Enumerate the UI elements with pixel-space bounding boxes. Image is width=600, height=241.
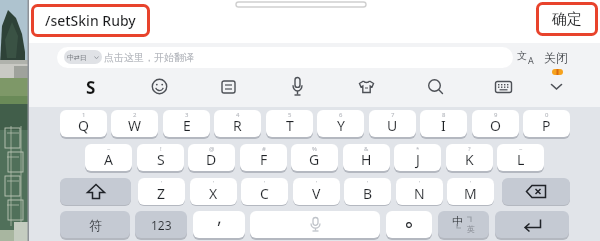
- button[interactable]: 1: [60, 110, 107, 137]
- button[interactable]: 8: [420, 110, 467, 137]
- button[interactable]: ?: [446, 144, 493, 171]
- button[interactable]: ': [241, 178, 288, 205]
- staticText: O: [490, 116, 501, 135]
- staticText: @: [209, 145, 215, 153]
- button[interactable]: ': [138, 178, 185, 205]
- staticText: N: [414, 184, 425, 203]
- staticText: 6: [339, 111, 343, 119]
- button[interactable]: 确定: [536, 2, 598, 36]
- button[interactable]: [547, 77, 566, 96]
- button[interactable]: [426, 77, 445, 96]
- staticText: E: [183, 116, 191, 135]
- button[interactable]: [502, 178, 570, 205]
- staticText: H: [361, 150, 372, 169]
- staticText: ': [264, 179, 266, 187]
- staticText: ,: [217, 205, 222, 230]
- staticText: 英: [467, 224, 475, 234]
- button[interactable]: 4: [214, 110, 261, 137]
- staticText: I: [441, 116, 446, 135]
- button[interactable]: 3: [163, 110, 210, 137]
- staticText: X: [209, 184, 218, 203]
- button[interactable]: 文: [517, 49, 538, 66]
- staticText: ': [419, 179, 421, 187]
- button[interactable]: [60, 178, 131, 205]
- button[interactable]: *: [394, 144, 441, 171]
- button[interactable]: ,: [193, 211, 245, 238]
- staticText: K: [465, 150, 474, 169]
- staticText: G: [309, 150, 320, 169]
- staticText: ': [161, 179, 163, 187]
- button[interactable]: [288, 77, 307, 96]
- button[interactable]: 9: [472, 110, 519, 137]
- staticText: P: [542, 116, 551, 135]
- staticText: 2: [133, 111, 137, 119]
- button[interactable]: 中: [438, 211, 489, 238]
- staticText: ': [367, 179, 369, 187]
- button[interactable]: ~: [497, 144, 544, 171]
- button[interactable]: [494, 77, 513, 96]
- button[interactable]: @: [188, 144, 235, 171]
- button[interactable]: ': [447, 178, 494, 205]
- staticText: 3: [185, 111, 189, 119]
- button[interactable]: [150, 77, 169, 96]
- staticText: A: [528, 54, 534, 66]
- button[interactable]: ': [396, 178, 443, 205]
- staticText: 4: [236, 111, 240, 119]
- staticText: 5: [288, 111, 292, 119]
- staticText: V: [312, 184, 321, 203]
- staticText: J: [416, 150, 420, 169]
- button[interactable]: [219, 77, 238, 96]
- button[interactable]: [250, 211, 380, 238]
- staticText: ': [316, 179, 318, 187]
- button[interactable]: 符: [60, 211, 130, 238]
- staticText: A: [104, 150, 113, 169]
- staticText: Y: [337, 116, 345, 135]
- button[interactable]: [495, 211, 569, 238]
- staticText: Q: [78, 116, 89, 135]
- staticText: *: [416, 145, 420, 153]
- button[interactable]: 7: [369, 110, 416, 137]
- staticText: B: [363, 184, 373, 203]
- staticText: 文: [517, 49, 527, 62]
- staticText: ': [213, 179, 215, 187]
- button[interactable]: &: [343, 144, 390, 171]
- button[interactable]: ~: [85, 144, 132, 171]
- staticText: D: [206, 150, 217, 169]
- staticText: F: [260, 150, 268, 169]
- staticText: #: [262, 145, 266, 153]
- staticText: ~: [107, 145, 111, 153]
- button[interactable]: ': [344, 178, 391, 205]
- staticText: C: [260, 184, 269, 203]
- staticText: 0: [545, 111, 549, 119]
- button[interactable]: #: [240, 144, 287, 171]
- staticText: M: [464, 184, 477, 203]
- staticText: 中: [452, 214, 463, 228]
- staticText: &: [364, 145, 369, 153]
- button[interactable]: 中⇄日: [57, 47, 513, 68]
- button[interactable]: [357, 77, 376, 96]
- button[interactable]: !: [137, 144, 184, 171]
- staticText: U: [387, 116, 398, 135]
- staticText: L: [517, 150, 525, 169]
- button[interactable]: S: [82, 76, 100, 96]
- button[interactable]: 6: [317, 110, 364, 137]
- button[interactable]: [386, 211, 432, 238]
- button[interactable]: %: [291, 144, 338, 171]
- staticText: 7: [391, 111, 395, 119]
- button[interactable]: 关闭: [544, 49, 568, 66]
- button[interactable]: 123: [135, 211, 187, 238]
- button[interactable]: ': [293, 178, 340, 205]
- staticText: W: [128, 116, 142, 135]
- button[interactable]: 0: [523, 110, 570, 137]
- button[interactable]: 2: [111, 110, 158, 137]
- staticText: 1: [82, 111, 86, 119]
- button[interactable]: 5: [266, 110, 313, 137]
- staticText: 9: [494, 111, 498, 119]
- staticText: 123: [151, 217, 172, 233]
- staticText: 关闭: [544, 50, 568, 65]
- staticText: S: [86, 76, 96, 96]
- staticText: 中⇄日: [67, 53, 87, 62]
- button[interactable]: /setSkin Ruby: [31, 4, 150, 37]
- staticText: %: [312, 145, 317, 153]
- button[interactable]: ': [190, 178, 237, 205]
